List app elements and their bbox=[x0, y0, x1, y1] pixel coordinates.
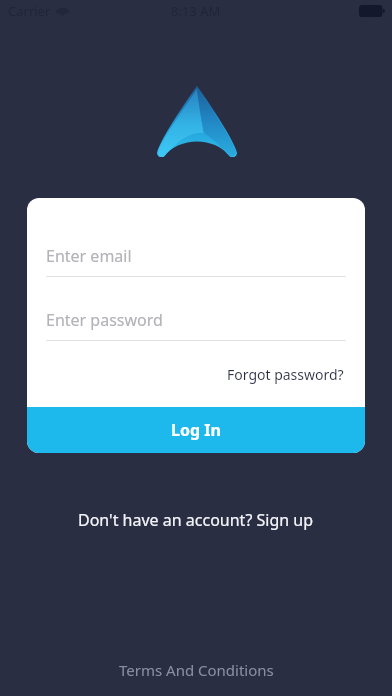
staticText: Log In bbox=[171, 419, 221, 441]
staticText: Enter password bbox=[46, 309, 163, 331]
other: Battery bbox=[359, 5, 385, 17]
staticText: Terms And Conditions bbox=[119, 660, 274, 680]
button[interactable]: Log In bbox=[27, 407, 365, 453]
staticText: Enter email bbox=[46, 245, 132, 267]
staticText: Don't have an account? Sign up bbox=[78, 509, 314, 531]
button[interactable]: Terms And Conditions bbox=[109, 654, 284, 686]
staticText: Forgot password? bbox=[227, 365, 344, 384]
button[interactable]: Forgot password? bbox=[225, 361, 346, 388]
button[interactable]: Enter email bbox=[46, 245, 346, 277]
button[interactable]: Enter password bbox=[46, 309, 346, 341]
button[interactable]: Don't have an account? Sign up bbox=[70, 503, 322, 537]
